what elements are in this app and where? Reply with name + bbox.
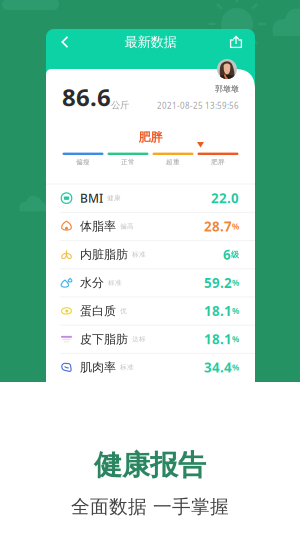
staticText: % [232, 362, 239, 373]
staticText: % [232, 334, 239, 344]
staticText: 59.2 [204, 274, 232, 292]
button[interactable]: Back [52, 30, 78, 54]
staticText: 达标 [132, 335, 146, 343]
staticText: 偏瘦 [76, 158, 90, 166]
staticText: 健康 [107, 194, 121, 202]
staticText: % [232, 306, 239, 316]
staticText: 肥胖 [138, 130, 162, 145]
staticText: 体脂率 [80, 219, 116, 234]
staticText: 标准 [132, 250, 146, 259]
staticText: 全面数据 一手掌握 [71, 495, 229, 518]
staticText: 18.1 [204, 330, 232, 348]
staticText: 超重 [166, 158, 180, 166]
staticText: 健康报告 [94, 448, 206, 482]
staticText: 最新数据 [124, 34, 176, 50]
staticText: 22.0 [211, 189, 239, 207]
staticText: 86.6 [62, 81, 111, 113]
staticText: 标准 [120, 363, 134, 371]
staticText: 6 [223, 246, 231, 263]
staticText: BMI [80, 190, 103, 206]
staticText: 18.1 [204, 302, 232, 320]
staticText: 偏高 [120, 222, 134, 230]
staticText: 内脏脂肪 [80, 247, 128, 262]
staticText: 正常 [121, 158, 135, 166]
staticText: 级 [231, 250, 239, 259]
staticText: 蛋白质 [80, 304, 116, 318]
staticText: % [232, 221, 239, 232]
staticText: 2021-08-25 13:59:56 [157, 100, 239, 111]
button[interactable]: Share [223, 30, 249, 54]
staticText: 28.7 [204, 217, 232, 235]
staticText: 优 [120, 307, 127, 315]
staticText: 肥胖 [211, 158, 225, 166]
staticText: 34.4 [204, 358, 232, 376]
staticText: 郭墩墩 [215, 84, 239, 94]
staticText: 公斤 [111, 99, 129, 111]
staticText: 皮下脂肪 [80, 332, 128, 346]
staticText: 水分 [80, 275, 104, 290]
staticText: 肌肉率 [80, 360, 116, 375]
staticText: % [232, 277, 239, 288]
staticText: 标准 [108, 279, 122, 287]
